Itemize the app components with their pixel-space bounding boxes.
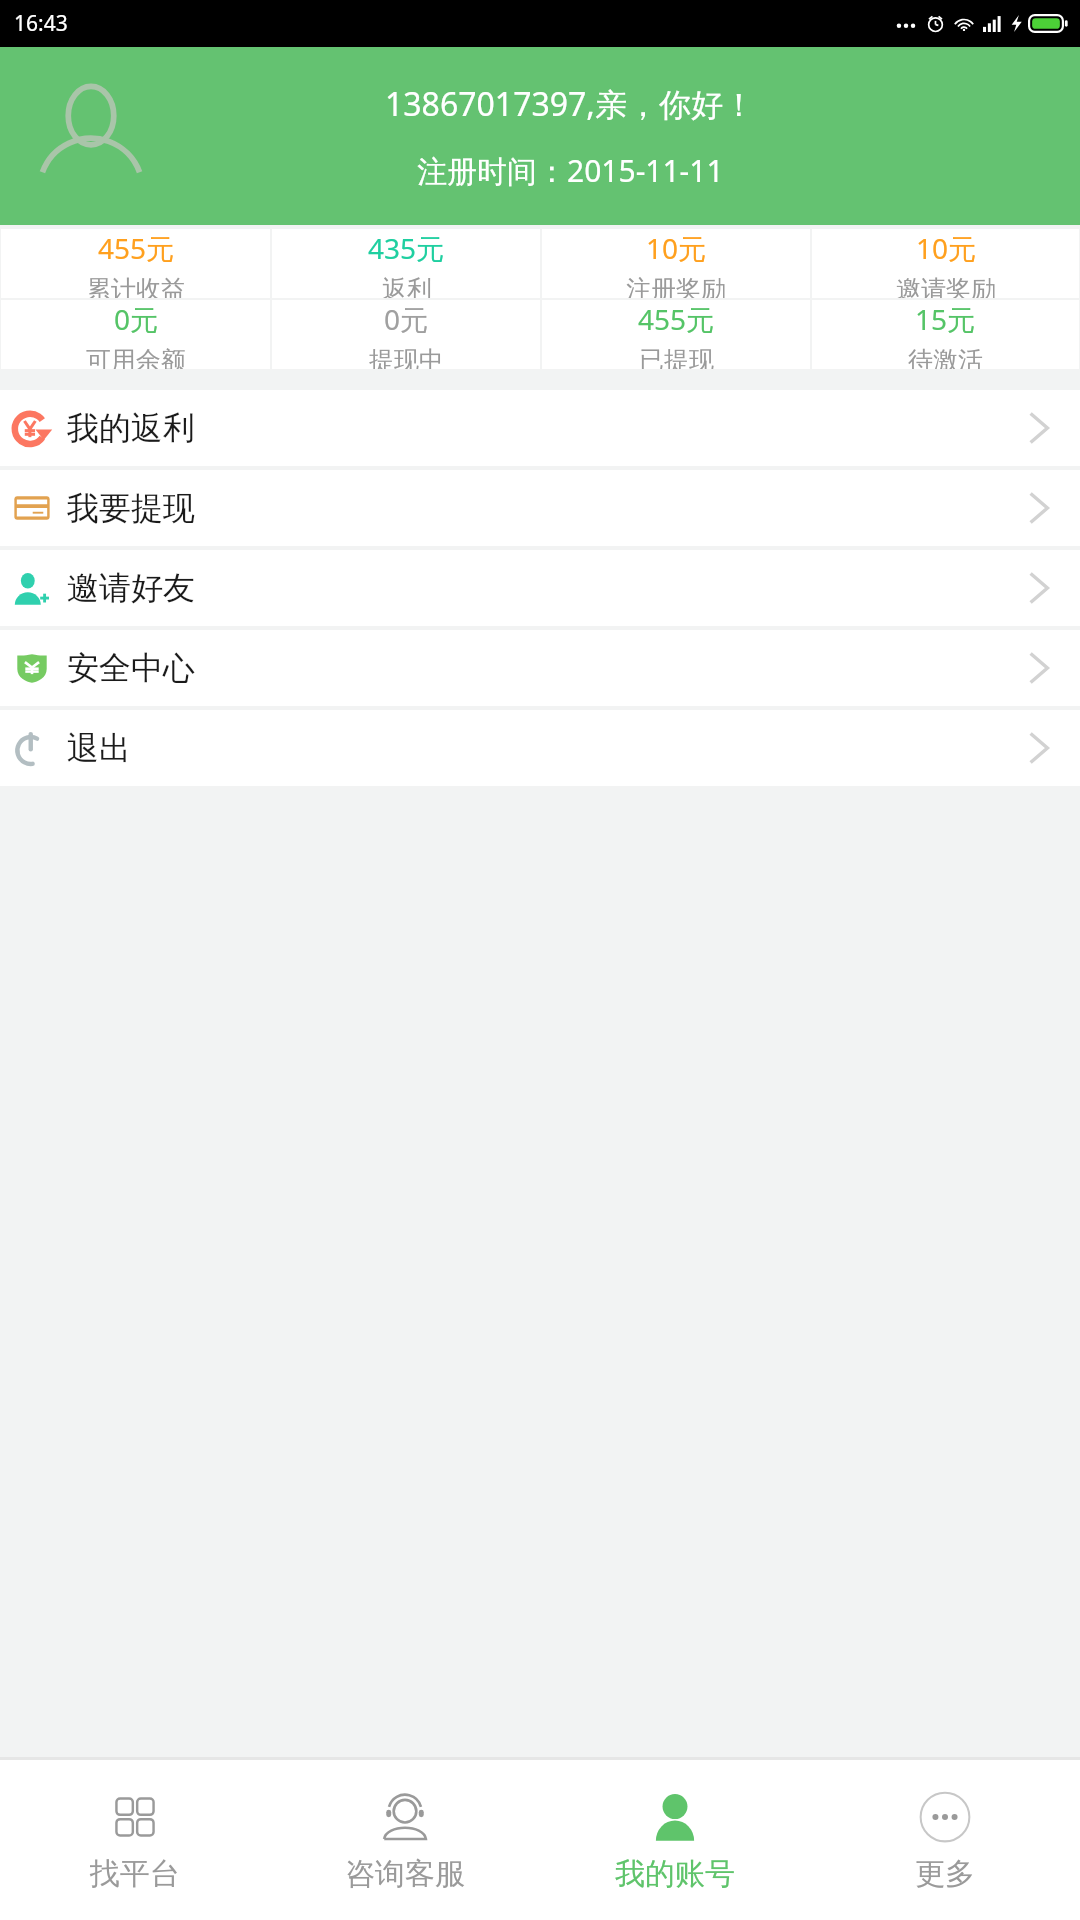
button[interactable]: 我的账号 [540, 1760, 810, 1920]
staticText: 10元 [916, 229, 977, 267]
staticText: 13867017397,亲，你好！ [385, 82, 755, 126]
staticText: 我的账号 [615, 1855, 735, 1893]
button[interactable]: 退出 [0, 710, 1080, 786]
button[interactable]: 我要提现 [0, 470, 1080, 546]
staticText: 16:43 [14, 9, 68, 38]
button[interactable]: 安全中心 [0, 630, 1080, 706]
staticText: 我的返利 [67, 408, 195, 448]
staticText: 邀请奖励 [896, 274, 996, 298]
staticText: 咨询客服 [345, 1855, 465, 1893]
staticText: 已提现 [639, 345, 714, 369]
staticText: 邀请好友 [67, 568, 195, 608]
staticText: 注册时间：2015-11-11 [417, 150, 724, 191]
staticText: 455元 [98, 229, 175, 267]
staticText: 0元 [114, 300, 159, 338]
staticText: 返利 [382, 274, 432, 298]
button[interactable]: 找平台 [0, 1760, 270, 1920]
button[interactable]: 咨询客服 [270, 1760, 540, 1920]
button[interactable]: 435元 [272, 229, 540, 298]
button[interactable]: 更多 [810, 1760, 1080, 1920]
button[interactable]: 455元 [542, 300, 810, 369]
button[interactable]: 我的返利 [0, 390, 1080, 466]
button[interactable]: 455元 [1, 229, 270, 298]
staticText: 累计收益 [86, 274, 186, 298]
button[interactable]: 10元 [812, 229, 1079, 298]
staticText: 找平台 [90, 1855, 180, 1893]
button[interactable]: 0元 [272, 300, 540, 369]
staticText: 退出 [67, 728, 131, 768]
button[interactable]: 10元 [542, 229, 810, 298]
staticText: 10元 [646, 229, 707, 267]
staticText: 15元 [915, 300, 976, 338]
button[interactable]: 0元 [1, 300, 270, 369]
staticText: 更多 [915, 1855, 975, 1893]
staticText: 可用余额 [86, 345, 186, 369]
button[interactable]: 邀请好友 [0, 550, 1080, 626]
staticText: 435元 [368, 229, 445, 267]
staticText: 安全中心 [67, 648, 195, 688]
staticText: 455元 [638, 300, 715, 338]
staticText: 提现中 [369, 345, 444, 369]
staticText: 我要提现 [67, 488, 195, 528]
staticText: 0元 [384, 300, 429, 338]
staticText: 待激活 [908, 345, 983, 369]
staticText: 注册奖励 [626, 274, 726, 298]
button[interactable]: 15元 [812, 300, 1079, 369]
